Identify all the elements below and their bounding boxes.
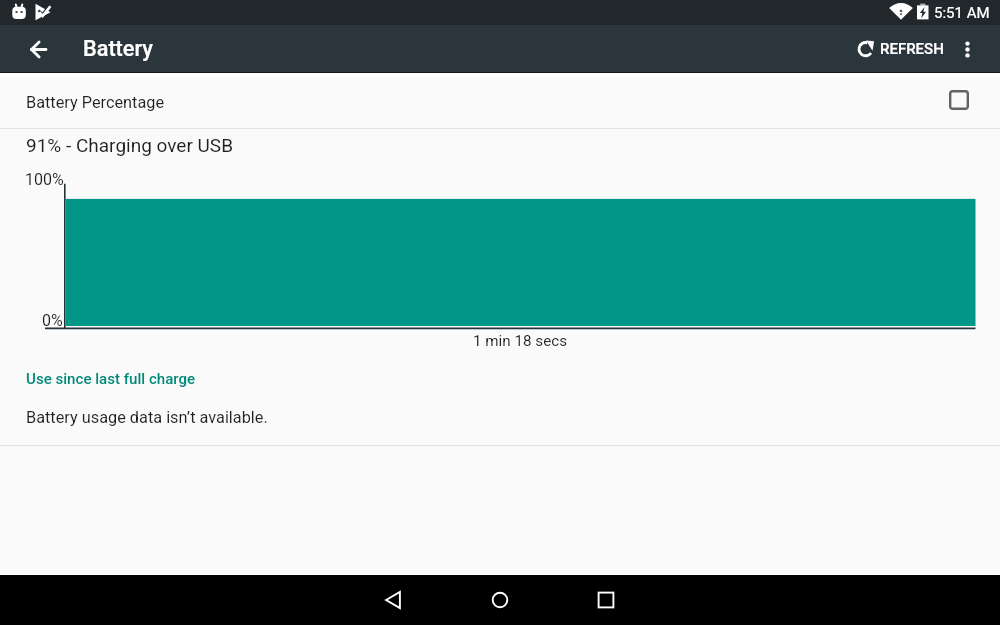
button[interactable]: More options — [950, 25, 986, 72]
button[interactable]: REFRESH — [849, 25, 952, 72]
button[interactable]: Use since last full charge — [26, 370, 196, 388]
button[interactable]: Recents — [576, 575, 636, 625]
staticText: 5:51 AM — [934, 4, 990, 22]
button[interactable]: Battery Percentage — [0, 76, 1000, 128]
button[interactable]: Home — [470, 575, 530, 625]
staticText: 0% — [42, 311, 63, 330]
staticText: 91% - Charging over USB — [26, 134, 233, 156]
staticText: Battery — [83, 36, 153, 61]
button[interactable]: Navigate up — [18, 25, 66, 72]
staticText: 1 min 18 secs — [473, 332, 567, 350]
staticText: Battery usage data isn’t available. — [26, 408, 268, 427]
button[interactable]: Back — [364, 575, 424, 625]
button[interactable]: Battery percentage, off — [949, 90, 969, 110]
staticText: REFRESH — [880, 40, 944, 58]
staticText: Battery Percentage — [26, 93, 165, 112]
staticText: 100% — [25, 170, 64, 189]
